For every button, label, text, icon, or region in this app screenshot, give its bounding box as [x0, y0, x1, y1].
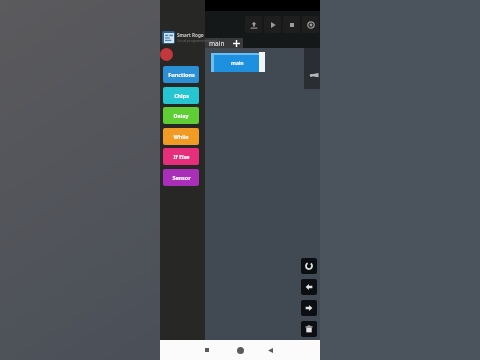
button[interactable]: Redo	[301, 300, 317, 316]
button[interactable]: Record	[160, 48, 173, 61]
staticText: Smart Rogo	[177, 32, 204, 38]
button[interactable]: Chips	[163, 87, 199, 104]
button[interactable]: Home	[230, 340, 250, 360]
staticText: Functions	[168, 71, 195, 78]
staticText: main	[231, 60, 244, 67]
staticText: Chips	[174, 92, 189, 99]
button[interactable]: Reset	[301, 258, 317, 274]
button[interactable]: Tools	[304, 48, 320, 89]
staticText: If Else	[173, 153, 190, 160]
button[interactable]: main	[209, 38, 225, 48]
button[interactable]: Back	[260, 340, 280, 360]
button[interactable]: Stop	[283, 16, 300, 33]
button[interactable]: Recents	[197, 340, 217, 360]
staticText: Sensor	[172, 174, 191, 181]
button[interactable]: Run	[264, 16, 281, 33]
staticText: While	[173, 133, 189, 140]
button[interactable]: Functions	[163, 66, 199, 83]
button[interactable]: Add tab	[229, 38, 243, 48]
button[interactable]: main	[211, 53, 259, 72]
staticText: main	[209, 39, 225, 48]
button[interactable]: Delay	[163, 107, 199, 124]
button[interactable]: Delete	[301, 321, 317, 337]
staticText: Delay	[173, 112, 189, 119]
button[interactable]: Upload	[245, 16, 262, 33]
button[interactable]: If Else	[163, 148, 199, 165]
button[interactable]: Sensor	[163, 169, 199, 186]
button[interactable]: While	[163, 128, 199, 145]
button[interactable]: Settings	[302, 16, 319, 33]
button[interactable]: Undo	[301, 279, 317, 295]
staticText: Visual programming tool	[177, 38, 217, 43]
